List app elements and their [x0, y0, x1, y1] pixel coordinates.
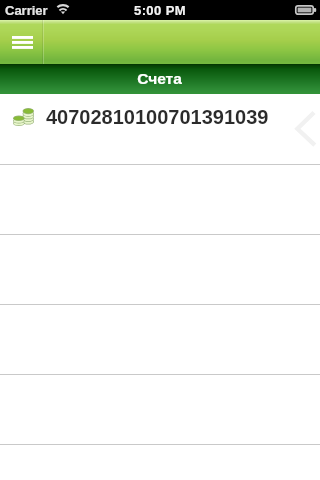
staticText: Carrier	[5, 3, 48, 18]
staticText: Счета	[137, 70, 182, 87]
other: Account	[13, 108, 34, 126]
button[interactable]: Menu	[0, 20, 43, 64]
other: Battery	[295, 5, 317, 15]
staticText: 5:00 PM	[134, 3, 186, 18]
button[interactable]: Account	[0, 94, 320, 164]
staticText: 40702810100701391039	[46, 106, 269, 128]
other: Wi-Fi signal	[56, 4, 70, 15]
